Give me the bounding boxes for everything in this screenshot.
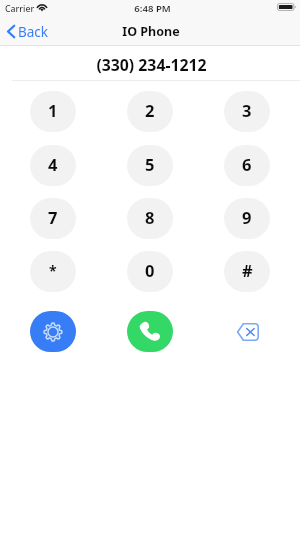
staticText: 6 xyxy=(242,153,252,175)
staticText: Carrier xyxy=(5,3,35,15)
staticText: IO Phone xyxy=(122,23,180,40)
button[interactable]: 3 xyxy=(224,91,270,132)
staticText: # xyxy=(242,259,253,281)
staticText: 5 xyxy=(145,153,155,175)
staticText: 8 xyxy=(145,206,155,228)
staticText: 7 xyxy=(48,206,58,228)
staticText: 0 xyxy=(145,259,155,281)
button[interactable]: 0 xyxy=(127,251,173,292)
staticText: 4 xyxy=(48,153,58,175)
staticText: * xyxy=(49,261,57,280)
button[interactable]: Call xyxy=(127,311,173,352)
button[interactable]: Back xyxy=(4,20,60,43)
button[interactable]: 6 xyxy=(224,145,270,186)
button[interactable]: * xyxy=(30,251,76,292)
button[interactable]: 5 xyxy=(127,145,173,186)
staticText: 1 xyxy=(48,99,58,121)
staticText: 3 xyxy=(242,99,252,121)
staticText: 2 xyxy=(145,99,155,121)
button[interactable]: 8 xyxy=(127,198,173,239)
button[interactable]: # xyxy=(224,251,270,292)
staticText: Back xyxy=(18,23,49,41)
button[interactable]: Settings xyxy=(30,311,76,352)
button[interactable]: 9 xyxy=(224,198,270,239)
staticText: 6:48 PM xyxy=(134,2,171,15)
button[interactable]: 2 xyxy=(127,91,173,132)
button[interactable]: 1 xyxy=(30,91,76,132)
button[interactable]: 7 xyxy=(30,198,76,239)
staticText: (330) 234-1212 xyxy=(96,54,207,76)
button[interactable]: Backspace xyxy=(224,311,270,352)
button[interactable]: 4 xyxy=(30,145,76,186)
staticText: 9 xyxy=(242,206,252,228)
